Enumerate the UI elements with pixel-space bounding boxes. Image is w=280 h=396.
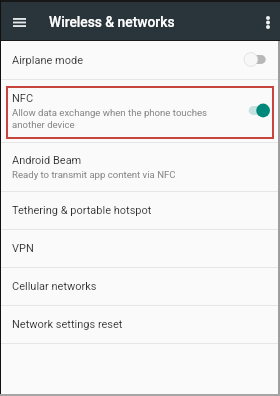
staticText: Allow data exchange when the phone touch… bbox=[12, 107, 207, 130]
staticText: Ready to transmit app content via NFC bbox=[12, 169, 176, 180]
staticText: VPN bbox=[12, 242, 34, 255]
button[interactable]: NFC bbox=[0, 80, 280, 142]
button[interactable]: VPN bbox=[0, 230, 280, 267]
staticText: Airplane mode bbox=[12, 54, 244, 67]
staticText: NFC bbox=[12, 92, 34, 105]
staticText: Tethering & portable hotspot bbox=[12, 204, 152, 217]
button[interactable]: Tethering & portable hotspot bbox=[0, 192, 280, 229]
button[interactable]: Open navigation drawer bbox=[6, 8, 32, 34]
button[interactable]: Airplane mode bbox=[0, 41, 280, 79]
staticText: Network settings reset bbox=[12, 318, 123, 331]
button[interactable]: Cellular networks bbox=[0, 268, 280, 305]
staticText: Android Beam bbox=[12, 154, 82, 167]
button[interactable]: Airplane mode off bbox=[244, 52, 270, 68]
button[interactable]: More options bbox=[257, 10, 279, 32]
staticText: Cellular networks bbox=[12, 280, 97, 293]
button[interactable]: NFC on bbox=[244, 103, 270, 119]
staticText: Wireless & networks bbox=[49, 14, 175, 30]
button[interactable]: Android Beam bbox=[0, 143, 280, 191]
button[interactable]: Network settings reset bbox=[0, 306, 280, 343]
